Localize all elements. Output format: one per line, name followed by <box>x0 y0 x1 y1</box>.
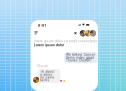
staticText: 9:41 <box>37 23 46 27</box>
staticText: lorem ipsum dolor sit amet consectetur a… <box>34 39 101 43</box>
staticText: Claude <box>37 65 48 68</box>
button[interactable]: Participants <box>79 30 96 37</box>
staticText: We talked. Cancel Demo index great Thank… <box>66 53 95 62</box>
button[interactable]: Menu <box>34 31 38 34</box>
staticText: I'm about to demo our same packs. <box>39 70 54 82</box>
staticText: Lorem ipsum dolor <box>34 43 64 47</box>
button[interactable]: Close <box>74 32 77 34</box>
